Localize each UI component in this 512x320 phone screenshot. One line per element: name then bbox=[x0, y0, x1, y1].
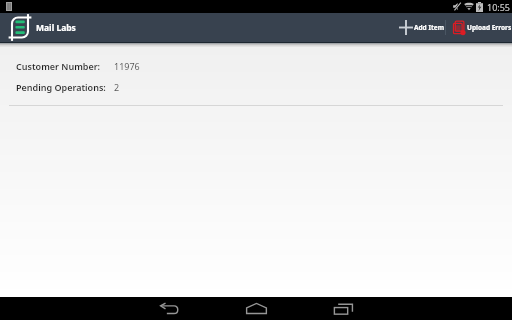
staticText: Upload Errors bbox=[467, 23, 512, 32]
button[interactable]: Back bbox=[152, 297, 186, 320]
staticText: Customer Number: bbox=[16, 60, 101, 72]
button[interactable]: Add Item bbox=[393, 13, 445, 42]
staticText: 2 bbox=[114, 81, 120, 93]
staticText: Mail Labs bbox=[36, 22, 76, 34]
staticText: Add Item bbox=[414, 23, 444, 32]
button[interactable]: Home bbox=[239, 297, 273, 320]
button[interactable]: Upload Errors bbox=[446, 13, 512, 42]
staticText: 11976 bbox=[114, 60, 140, 72]
other: Upload Errors bbox=[452, 20, 466, 36]
button[interactable]: Recent apps bbox=[326, 297, 360, 320]
button[interactable]: Mail Labs bbox=[0, 13, 82, 42]
staticText: Pending Operations: bbox=[16, 81, 106, 93]
staticText: 10:55 bbox=[487, 1, 511, 13]
